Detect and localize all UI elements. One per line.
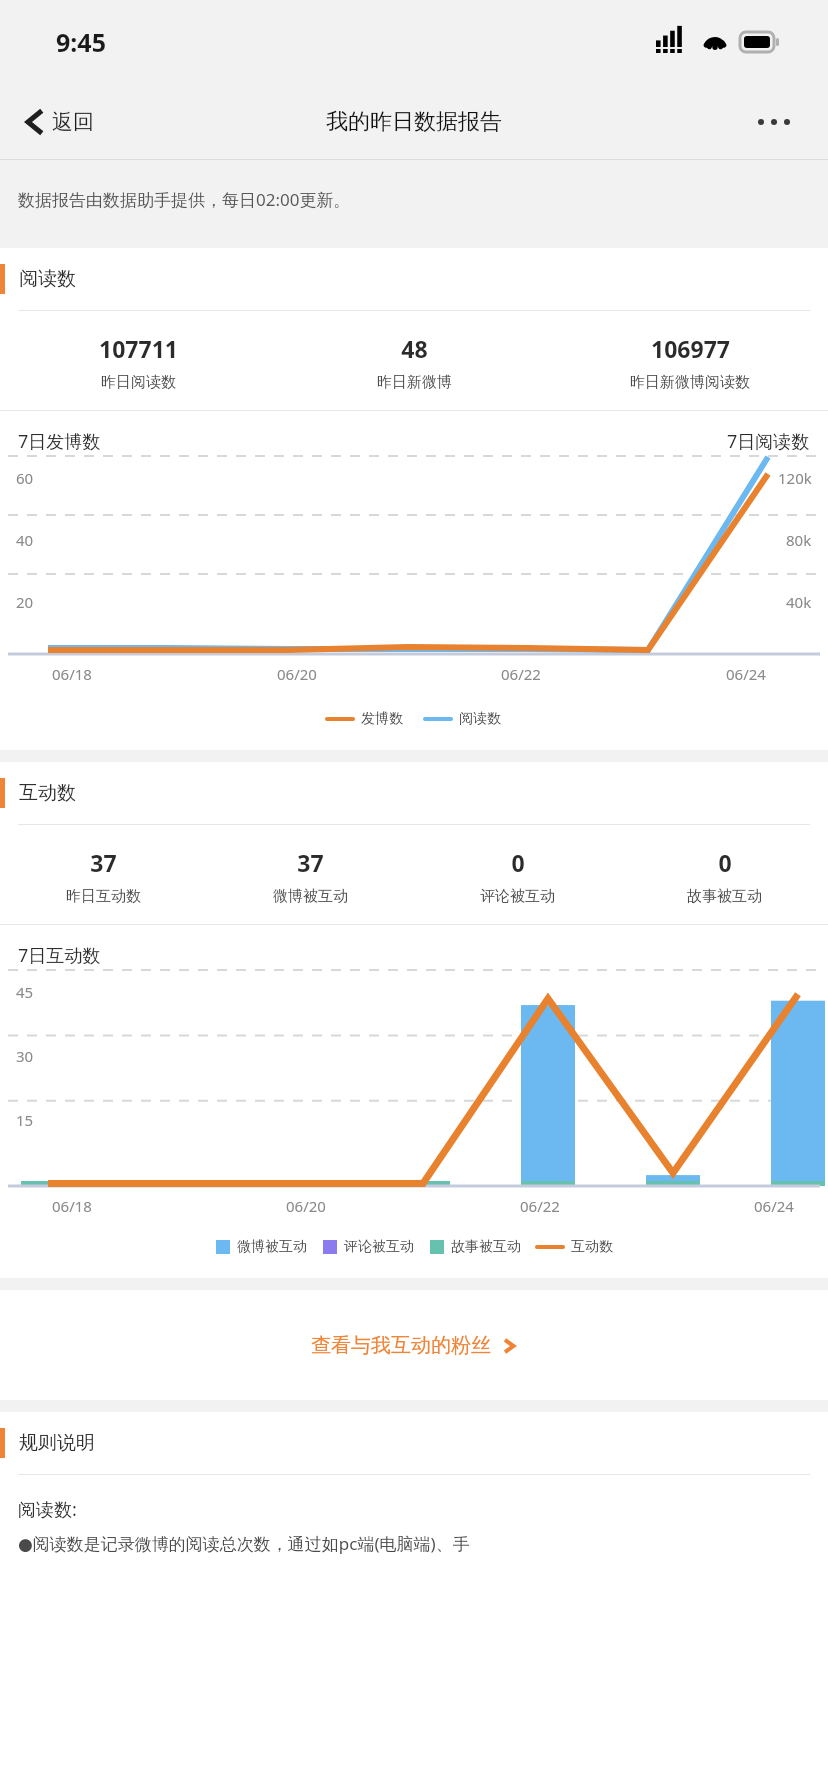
- staticText: 评论被互动: [480, 887, 555, 906]
- staticText: 06/18: [52, 664, 92, 684]
- staticText: 120k: [778, 468, 812, 488]
- staticText: 60: [16, 468, 34, 488]
- staticText: 7日互动数: [18, 943, 101, 968]
- staticText: 阅读数: [19, 267, 76, 291]
- staticText: 我的昨日数据报告: [326, 108, 502, 136]
- staticText: 微博被互动: [273, 887, 348, 906]
- staticText: 40: [16, 530, 34, 550]
- staticText: 45: [16, 982, 34, 1002]
- staticText: 微博被互动: [237, 1238, 307, 1256]
- button[interactable]: 返回: [18, 101, 100, 143]
- staticText: 评论被互动: [344, 1238, 414, 1256]
- staticText: 发博数: [361, 710, 403, 728]
- staticText: 06/20: [277, 664, 317, 684]
- staticText: 规则说明: [19, 1431, 95, 1455]
- staticText: 9:45: [56, 25, 106, 59]
- staticText: 20: [16, 592, 34, 612]
- staticText: 昨日新微博: [377, 373, 452, 392]
- staticText: 昨日互动数: [66, 887, 141, 906]
- staticText: 0: [511, 847, 525, 878]
- staticText: 故事被互动: [451, 1238, 521, 1256]
- staticText: 107711: [99, 333, 178, 364]
- staticText: 06/24: [754, 1196, 794, 1216]
- staticText: 06/22: [520, 1196, 560, 1216]
- staticText: 06/20: [286, 1196, 326, 1216]
- staticText: 15: [16, 1110, 34, 1130]
- staticText: 互动数: [571, 1238, 613, 1256]
- staticText: 37: [90, 847, 117, 878]
- staticText: 80k: [786, 530, 812, 550]
- staticText: 40k: [786, 592, 812, 612]
- staticText: 37: [297, 847, 324, 878]
- button[interactable]: 查看与我互动的粉丝: [0, 1290, 828, 1400]
- staticText: 返回: [52, 109, 94, 135]
- staticText: 0: [718, 847, 732, 878]
- staticText: 106977: [651, 333, 730, 364]
- staticText: 48: [401, 333, 428, 364]
- staticText: 06/22: [501, 664, 541, 684]
- staticText: 昨日阅读数: [101, 373, 176, 392]
- staticText: 7日阅读数: [727, 429, 810, 454]
- staticText: 查看与我互动的粉丝: [311, 1333, 491, 1358]
- staticText: 故事被互动: [687, 887, 762, 906]
- staticText: 昨日新微博阅读数: [630, 373, 750, 392]
- staticText: ●阅读数是记录微博的阅读总次数，通过如pc端(电脑端)、手: [18, 1532, 470, 1555]
- button[interactable]: More options: [748, 109, 800, 135]
- staticText: 互动数: [19, 781, 76, 805]
- staticText: 阅读数: [459, 710, 501, 728]
- staticText: 30: [16, 1046, 34, 1066]
- staticText: 06/18: [52, 1196, 92, 1216]
- staticText: 数据报告由数据助手提供，每日02:00更新。: [18, 188, 351, 211]
- staticText: 06/24: [726, 664, 766, 684]
- staticText: 7日发博数: [18, 429, 101, 454]
- staticText: 阅读数:: [18, 1497, 77, 1522]
